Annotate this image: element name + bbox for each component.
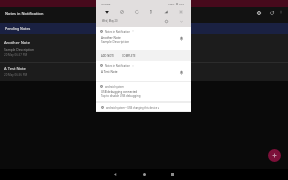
staticText: Sample Description [4, 47, 35, 51]
staticText: 3:24 [179, 2, 184, 5]
button[interactable]: Do not disturb [117, 7, 126, 16]
button[interactable]: A Test Note [0, 63, 288, 81]
staticText: Pending Notes [5, 26, 31, 31]
button[interactable]: ADD NOTE [100, 53, 116, 59]
staticText: android system • USB charging this devic… [106, 106, 160, 110]
button[interactable]: Add note [268, 149, 281, 162]
button[interactable]: Auto-rotate [132, 7, 141, 16]
button[interactable]: Back [110, 169, 121, 180]
staticText: A Test Note [4, 66, 26, 72]
button[interactable]: Battery saver [146, 7, 155, 16]
button[interactable]: Another Note [0, 34, 288, 62]
button[interactable]: Mobile data [161, 7, 170, 16]
staticText: Notes in Notification [105, 30, 130, 34]
staticText: android system [105, 85, 124, 89]
button[interactable]: android system [96, 82, 191, 101]
button[interactable]: Settings [253, 7, 264, 18]
button[interactable]: Flashlight [176, 7, 185, 16]
staticText: Wed, May 20 [102, 19, 118, 23]
staticText: Android [101, 2, 111, 5]
staticText: Tap to disable USB debugging [101, 94, 141, 98]
staticText: Notes in Notification [5, 11, 44, 16]
button[interactable]: android system • USB charging this devic… [96, 103, 191, 111]
staticText: A Test Note [101, 70, 118, 74]
button[interactable]: Refresh [266, 7, 277, 18]
button[interactable]: Settings [163, 18, 170, 25]
button[interactable]: Expand [178, 18, 185, 25]
button[interactable]: More options [276, 7, 286, 17]
staticText: USB debugging connected [101, 90, 138, 94]
button[interactable]: COMPLETE [121, 53, 137, 59]
button[interactable]: Wi-Fi [102, 7, 111, 16]
button[interactable]: Home [139, 169, 150, 180]
staticText: Another Note [4, 40, 31, 46]
staticText: 20 May 06:36 PM [4, 73, 28, 77]
button[interactable]: Recent apps [167, 169, 178, 180]
staticText: Another Note [101, 36, 121, 40]
button[interactable]: Notes in Notification [96, 27, 191, 62]
staticText: 20 May 06:37 PM [4, 53, 28, 57]
button[interactable]: Pending Notes [0, 23, 288, 34]
button[interactable]: Notes in Notification [96, 62, 191, 81]
staticText: Notes in Notification [105, 64, 130, 68]
staticText: 100% [168, 2, 175, 5]
staticText: Sample Description [101, 40, 130, 44]
